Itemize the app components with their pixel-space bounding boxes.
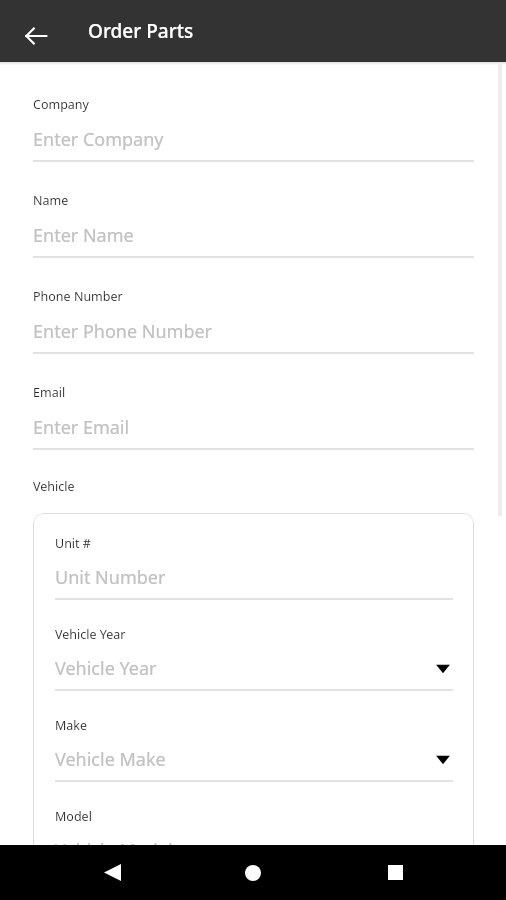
button[interactable]: Recent apps <box>365 845 425 900</box>
staticText: Email <box>33 384 66 401</box>
staticText: Order Parts <box>88 18 194 44</box>
button[interactable]: Back <box>14 14 58 58</box>
button[interactable]: Model <box>55 808 453 873</box>
staticText: Vehicle Model <box>55 838 435 863</box>
staticText: Enter Email <box>33 415 130 440</box>
staticText: Model <box>55 808 92 825</box>
button[interactable]: Make <box>55 717 453 782</box>
button[interactable]: Back <box>82 845 142 900</box>
button[interactable]: Home <box>223 845 283 900</box>
button[interactable]: Phone Number <box>33 288 474 354</box>
staticText: Vehicle Year <box>55 626 126 643</box>
button[interactable]: Unit # <box>55 535 453 600</box>
button[interactable]: Company <box>33 96 474 162</box>
button[interactable]: Vehicle Year <box>55 626 453 691</box>
button[interactable]: Email <box>33 384 474 450</box>
staticText: Name <box>33 192 69 209</box>
staticText: Enter Company <box>33 127 164 152</box>
staticText: Enter Name <box>33 223 134 248</box>
staticText: Unit Number <box>55 565 166 590</box>
staticText: Vehicle Year <box>55 656 435 681</box>
button[interactable]: Name <box>33 192 474 258</box>
staticText: Unit # <box>55 535 91 552</box>
staticText: Vehicle Make <box>55 747 435 772</box>
staticText: Phone Number <box>33 288 123 305</box>
staticText: Vehicle <box>33 478 75 495</box>
staticText: Company <box>33 96 89 113</box>
staticText: Enter Phone Number <box>33 319 213 344</box>
staticText: Make <box>55 717 88 734</box>
